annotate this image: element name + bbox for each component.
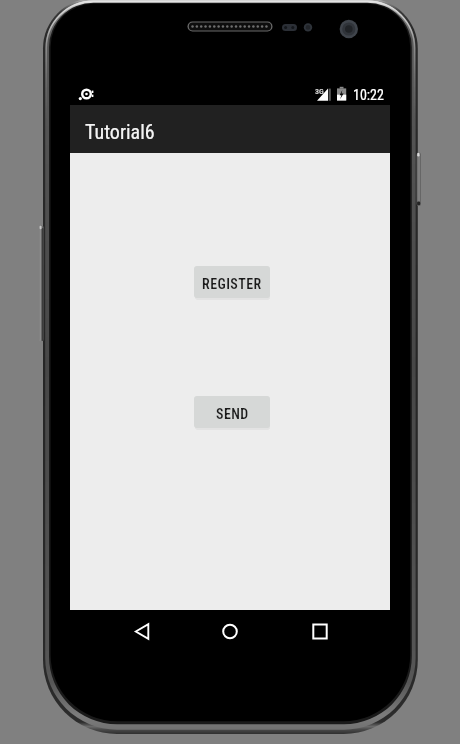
button[interactable]: REGISTER — [194, 266, 270, 298]
staticText: SEND — [216, 406, 249, 422]
staticText: REGISTER — [202, 276, 262, 292]
staticText: Tutorial6 — [85, 120, 155, 143]
staticText: 10:22 — [353, 87, 384, 103]
button[interactable]: SEND — [194, 396, 270, 428]
button[interactable]: Tutorial6 — [70, 105, 390, 153]
staticText: 3G — [315, 87, 324, 96]
button[interactable]: Back — [112, 610, 172, 653]
button[interactable]: Recent apps — [290, 610, 350, 653]
button[interactable]: Home — [200, 610, 260, 653]
